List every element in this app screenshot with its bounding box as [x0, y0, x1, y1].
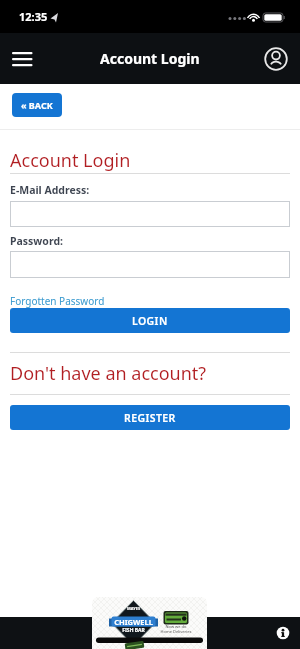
staticText: Now we do [162, 624, 190, 629]
staticText: LOGIN [132, 314, 168, 328]
staticText: 12:35 [19, 9, 48, 24]
button[interactable]: REGISTER [10, 405, 290, 430]
button[interactable]: Forgotten Password [10, 294, 105, 308]
staticText: Password: [10, 234, 63, 248]
button[interactable] [270, 620, 295, 646]
button[interactable] [10, 251, 290, 278]
staticText: CHIGWELL [111, 617, 156, 627]
button[interactable] [6, 46, 38, 72]
staticText: Don't have an account? [10, 361, 207, 386]
button[interactable]: LOGIN [10, 308, 290, 333]
staticText: « BACK [21, 99, 53, 111]
button[interactable] [262, 46, 290, 72]
staticText: REGISTER [124, 411, 176, 425]
button[interactable]: MAYES [92, 597, 207, 649]
staticText: Account Login [100, 49, 200, 68]
staticText: MAYES [121, 606, 146, 611]
staticText: E-Mail Address: [10, 183, 90, 197]
staticText: Account Login [10, 148, 131, 173]
staticText: FISH BAR [116, 627, 151, 634]
button[interactable] [10, 201, 290, 227]
button[interactable]: « BACK [12, 93, 62, 117]
staticText: Home Deliveries [160, 629, 192, 634]
